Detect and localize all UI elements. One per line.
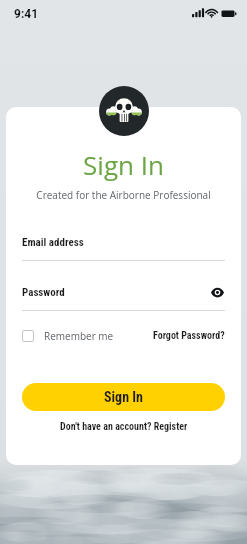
button[interactable]: Don't have an account? Register xyxy=(6,421,241,433)
button[interactable]: Show password xyxy=(209,284,225,300)
staticText: 9:41 xyxy=(14,7,39,21)
staticText: Password xyxy=(22,286,209,299)
staticText: Sign In xyxy=(6,147,241,182)
staticText: Created for the Airborne Professional xyxy=(6,188,241,202)
staticText: Don't have an account? Register xyxy=(60,421,188,433)
staticText: Forgot Password? xyxy=(153,330,225,342)
button[interactable]: Forgot Password? xyxy=(153,330,225,342)
staticText: Sign In xyxy=(104,389,143,405)
staticText: Remember me xyxy=(44,329,114,343)
button[interactable]: Remember me xyxy=(22,329,114,343)
staticText: Email address xyxy=(22,236,84,249)
button[interactable]: Sign In xyxy=(22,383,225,411)
